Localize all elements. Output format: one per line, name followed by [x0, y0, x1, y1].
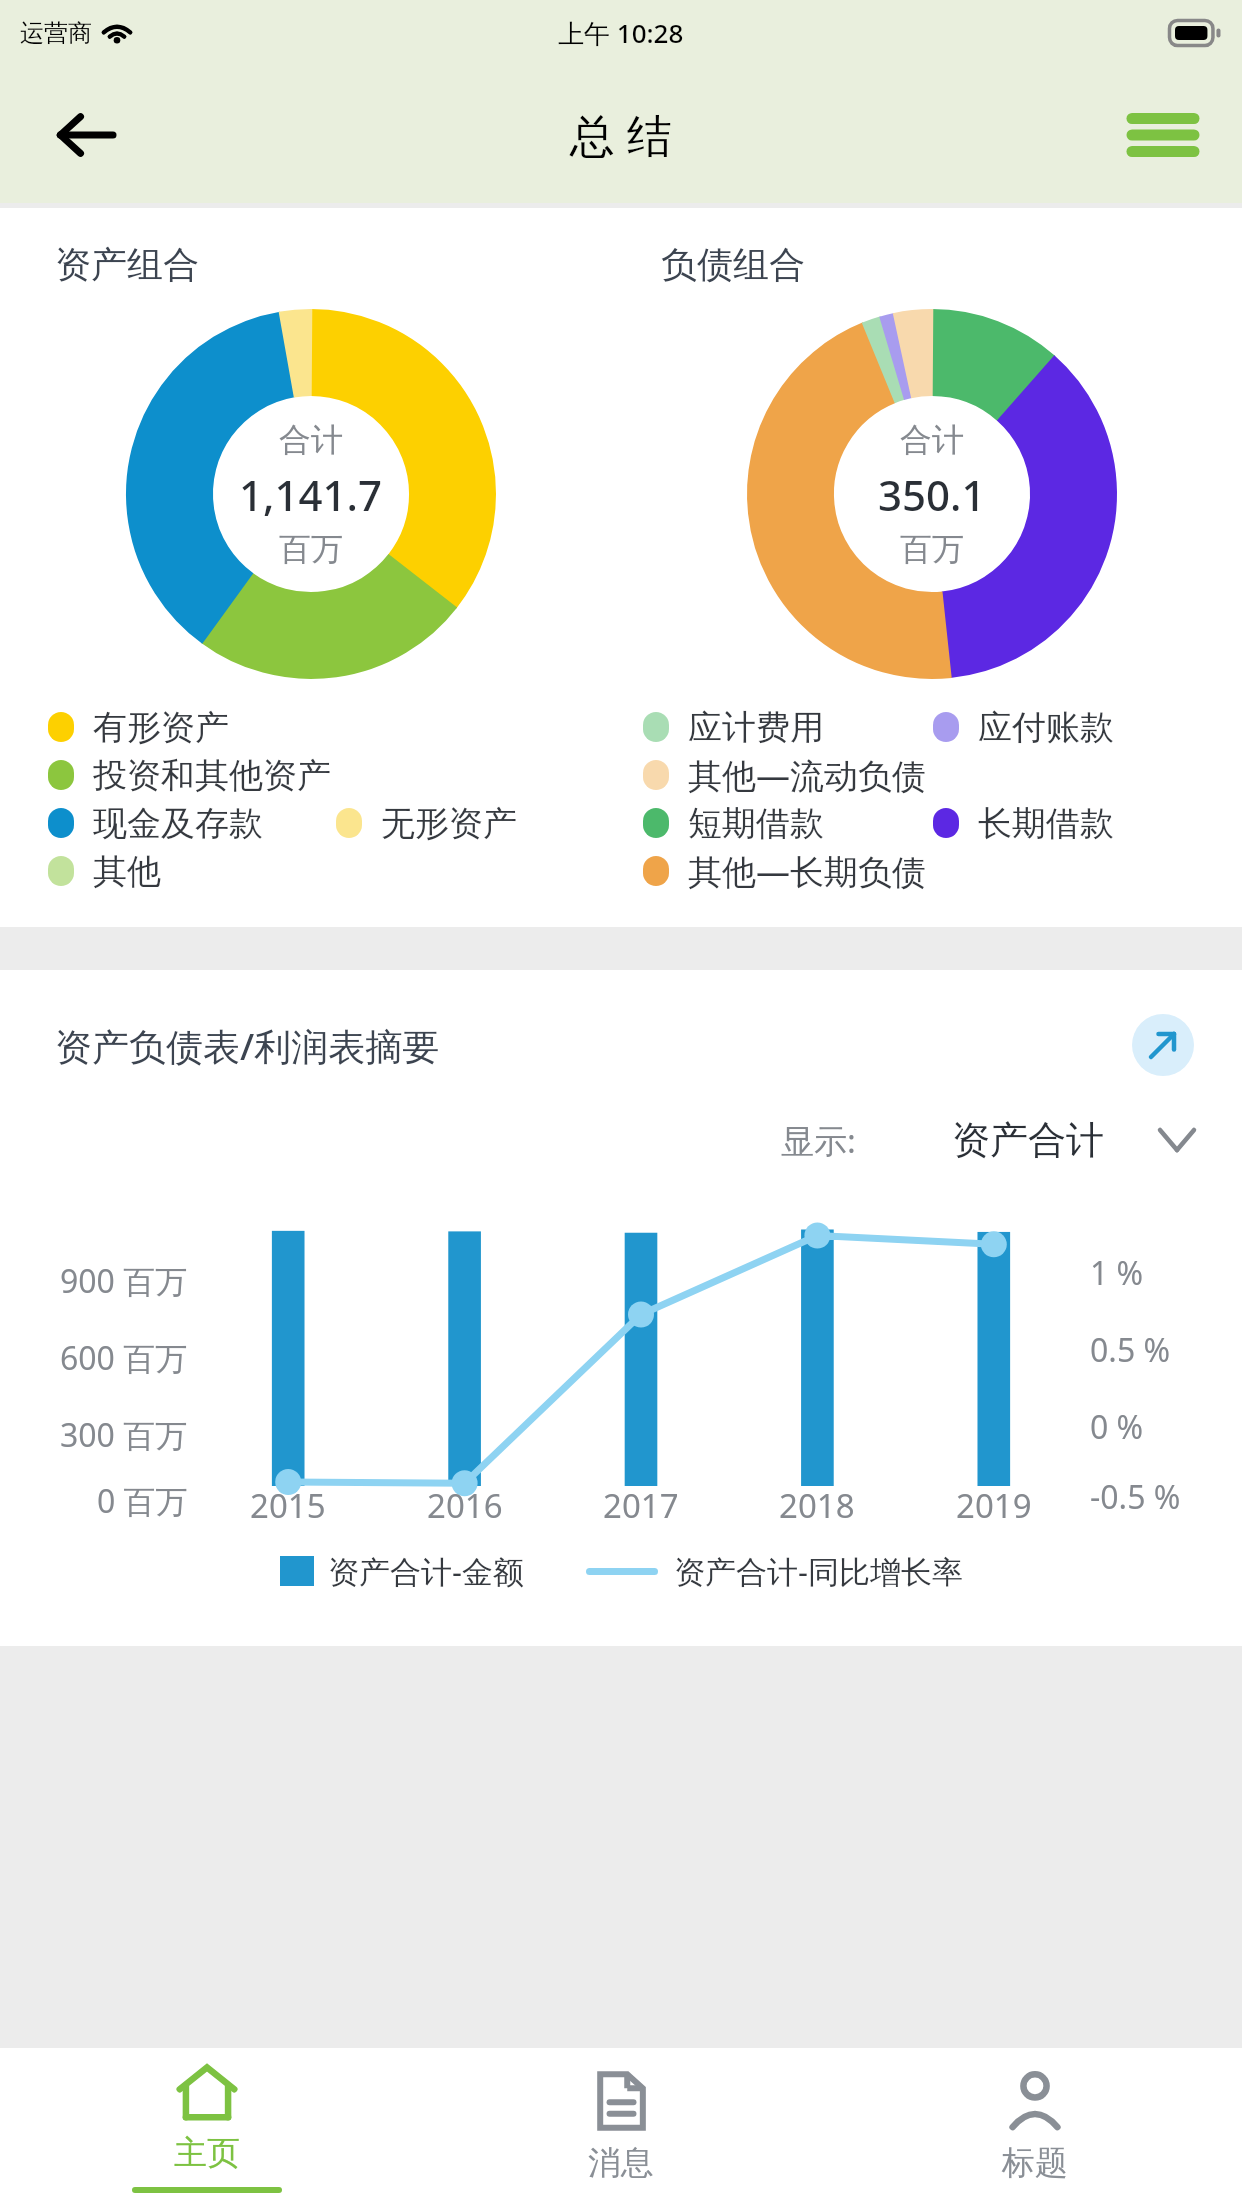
staticText: 1 % — [1090, 1251, 1144, 1295]
staticText: 2015 — [250, 1483, 326, 1528]
staticText: 资产组合 — [55, 242, 199, 287]
staticText: 运营商 — [20, 18, 92, 48]
staticText: 2018 — [779, 1483, 855, 1528]
button[interactable]: 无形资产 — [336, 799, 517, 847]
button[interactable]: 其他—长期负债 — [643, 847, 926, 895]
button[interactable]: 消息 — [414, 2048, 828, 2208]
staticText: 0 % — [1090, 1405, 1144, 1449]
button[interactable]: 短期借款 — [643, 799, 824, 847]
staticText: 资产合计-同比增长率 — [674, 1550, 963, 1592]
staticText: 上午 10:28 — [558, 15, 684, 51]
staticText: 资产负债表/利润表摘要 — [55, 1020, 440, 1071]
staticText: 0 百万 — [97, 1479, 188, 1523]
staticText: 资产合计 — [952, 1116, 1104, 1164]
staticText: 无形资产 — [381, 802, 517, 845]
staticText: 投资和其他资产 — [93, 754, 331, 797]
button[interactable]: 投资和其他资产 — [48, 751, 331, 799]
button[interactable]: Expand — [1132, 1014, 1194, 1076]
staticText: 合计 — [279, 420, 343, 460]
staticText: 长期借款 — [978, 802, 1114, 845]
staticText: 1,141.7 — [239, 466, 383, 523]
staticText: 应付账款 — [978, 706, 1114, 749]
staticText: 总 结 — [570, 104, 672, 165]
staticText: 300 百万 — [60, 1413, 188, 1457]
button[interactable]: Menu — [1120, 92, 1206, 178]
staticText: 2019 — [956, 1483, 1032, 1528]
staticText: 短期借款 — [688, 802, 824, 845]
staticText: 现金及存款 — [93, 802, 263, 845]
staticText: 标题 — [1002, 2142, 1068, 2184]
staticText: 资产合计-金额 — [328, 1550, 524, 1592]
button[interactable]: 资产合计 — [952, 1116, 1194, 1164]
staticText: 有形资产 — [93, 706, 229, 749]
staticText: 合计 — [900, 420, 964, 460]
staticText: 显示: — [781, 1118, 856, 1163]
staticText: 应计费用 — [688, 706, 824, 749]
staticText: 600 百万 — [60, 1336, 188, 1380]
staticText: 900 百万 — [60, 1259, 188, 1303]
staticText: 2017 — [603, 1483, 679, 1528]
button[interactable]: 有形资产 — [48, 703, 229, 751]
staticText: 2016 — [427, 1483, 503, 1528]
button[interactable]: 其他—流动负债 — [643, 751, 926, 799]
button[interactable]: 标题 — [828, 2048, 1242, 2208]
staticText: 负债组合 — [661, 242, 805, 287]
button[interactable]: Back — [48, 98, 122, 172]
staticText: 0.5 % — [1090, 1328, 1171, 1372]
button[interactable]: 主页 — [0, 2048, 414, 2208]
button[interactable]: 长期借款 — [933, 799, 1114, 847]
staticText: 其他—长期负债 — [688, 848, 926, 894]
staticText: 主页 — [174, 2132, 240, 2174]
button[interactable]: 现金及存款 — [48, 799, 263, 847]
staticText: 其他—流动负债 — [688, 752, 926, 798]
button[interactable]: 应付账款 — [933, 703, 1114, 751]
staticText: -0.5 % — [1090, 1475, 1181, 1519]
staticText: 消息 — [588, 2142, 654, 2184]
button[interactable]: 应计费用 — [643, 703, 824, 751]
staticText: 百万 — [900, 529, 964, 569]
button[interactable]: 其他 — [48, 847, 161, 895]
staticText: 其他 — [93, 850, 161, 893]
staticText: 百万 — [279, 529, 343, 569]
staticText: 350.1 — [878, 466, 986, 523]
